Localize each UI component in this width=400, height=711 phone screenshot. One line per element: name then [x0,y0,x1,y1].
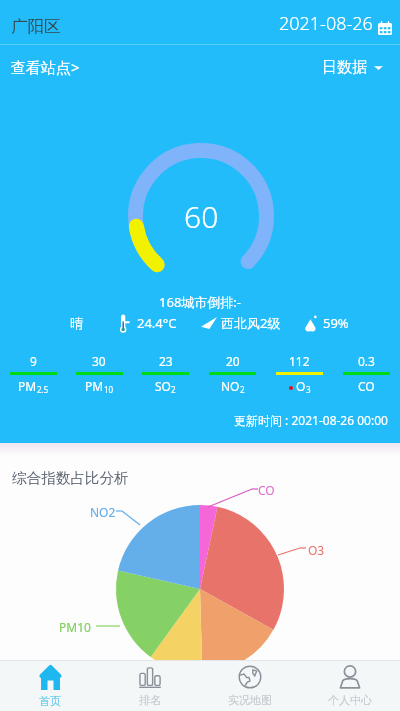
button[interactable]: 112 [266,353,333,394]
button[interactable]: 0.3 [333,353,400,394]
staticText: 9 [30,353,37,369]
staticText: PM [85,378,104,394]
staticText: 3 [306,384,311,395]
other: 个人中心 [338,665,362,689]
button[interactable]: 日数据 [322,58,383,77]
staticText: CO [358,378,375,394]
staticText: O3 [308,542,325,558]
other: Calendar [378,21,392,35]
staticText: 综合指数占比分析 [12,469,129,487]
button[interactable]: 实况地图 [200,661,300,711]
staticText: 2.5 [37,384,49,395]
staticText: 广阳区 [11,16,61,37]
button[interactable]: 20 [199,353,266,394]
staticText: 30 [92,353,106,369]
staticText: 10 [104,384,114,395]
staticText: 日数据 [322,58,367,77]
staticText: SO [155,378,171,394]
staticText: 2 [240,384,245,395]
staticText: 0.3 [358,353,375,369]
button[interactable]: 个人中心 [300,661,400,711]
other: 首页 [38,665,63,690]
staticText: 20 [226,353,240,369]
staticText: 西北风2级 [221,314,281,332]
staticText: 168城市倒排:- [0,293,400,311]
staticText: CO [258,482,275,498]
staticText: NO [221,378,240,394]
staticText: PM [18,378,37,394]
staticText: 晴 [70,315,83,331]
button[interactable]: 首页 [0,661,100,711]
staticText: PM10 [59,619,91,635]
staticText: 112 [289,353,310,369]
staticText: 2021-08-26 [279,11,373,36]
staticText: O [296,378,306,394]
staticText: 23 [159,353,173,369]
staticText: 排名 [139,693,161,707]
staticText: 2 [171,384,176,395]
button[interactable]: 查看站点> [11,57,80,77]
staticText: 59% [323,314,349,332]
staticText: 更新时间 : 2021-08-26 00:00 [234,412,388,428]
button[interactable]: 排名 [100,661,200,711]
staticText: 个人中心 [328,693,372,707]
staticText: 24.4°C [137,314,177,332]
button[interactable]: 2021-08-26 [279,10,392,35]
button[interactable]: 23 [132,353,199,394]
button[interactable]: 30 [66,353,132,394]
other: 实况地图 [238,665,262,689]
staticText: 首页 [39,694,61,708]
staticText: 实况地图 [228,693,272,707]
other: 排名 [138,665,162,689]
staticText: 60 [184,196,219,237]
staticText: NO2 [90,504,116,520]
button[interactable]: 9 [0,353,66,394]
